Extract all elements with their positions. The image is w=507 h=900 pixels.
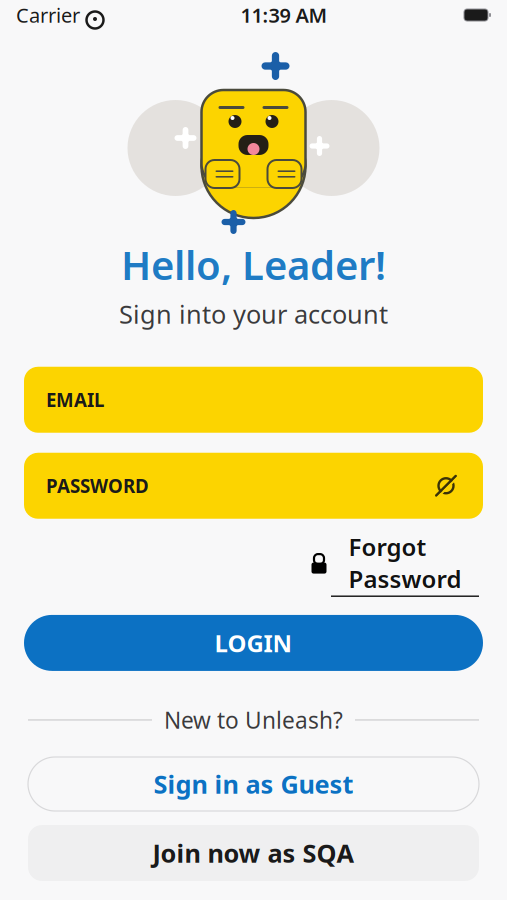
button[interactable]: PASSWORD [24,453,483,519]
button[interactable]: Sign in as Guest [28,757,479,811]
staticText: 11:39 AM [240,2,327,28]
staticText: LOGIN [214,627,292,659]
staticText: Carrier [16,2,80,28]
staticText: EMAIL [46,387,104,412]
staticText: Sign into your account [119,297,388,331]
button[interactable]: EMAIL [24,367,483,433]
button[interactable]: LOGIN [24,615,483,671]
staticText: Hello, Leader! [121,238,386,291]
staticText: New to Unleash? [164,705,343,735]
button[interactable]: Join now as SQA [28,825,479,881]
staticText: Sign in as Guest [153,767,353,801]
staticText: Join now as SQA [152,836,354,870]
button[interactable]: Forgot Password [311,531,479,597]
staticText: Forgot Password [348,531,461,594]
staticText: PASSWORD [46,473,149,498]
